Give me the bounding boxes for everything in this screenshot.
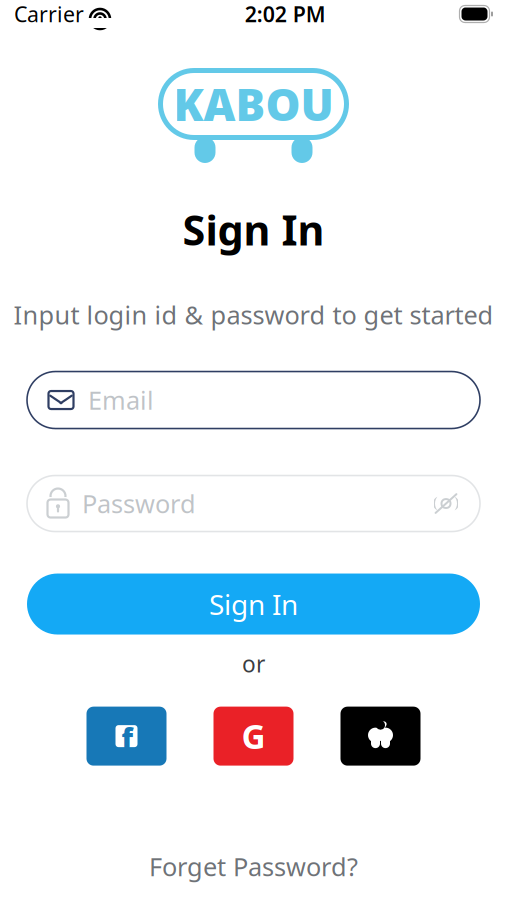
button[interactable]: Sign in with Facebook [86, 707, 166, 766]
button[interactable]: Sign in with Google [213, 707, 293, 766]
staticText: 2:02 PM [245, 0, 326, 28]
staticText: Forget Password? [149, 850, 358, 883]
staticText: G [241, 714, 265, 758]
staticText: Password [82, 487, 196, 520]
button[interactable]: Sign In [27, 573, 480, 634]
staticText: or [242, 648, 265, 679]
staticText: Sign In [182, 202, 324, 257]
button[interactable]: Email [27, 371, 480, 428]
staticText: Carrier [14, 0, 84, 28]
staticText: f [121, 719, 133, 757]
button[interactable]: Forget Password? [133, 842, 374, 891]
staticText: Input login id & password to get started [13, 298, 493, 331]
staticText: KABOU [173, 75, 333, 133]
staticText: Email [88, 383, 154, 417]
button[interactable]: Sign in with Apple [340, 707, 420, 766]
staticText: Sign In [209, 585, 298, 623]
button[interactable]: Password [27, 475, 480, 531]
